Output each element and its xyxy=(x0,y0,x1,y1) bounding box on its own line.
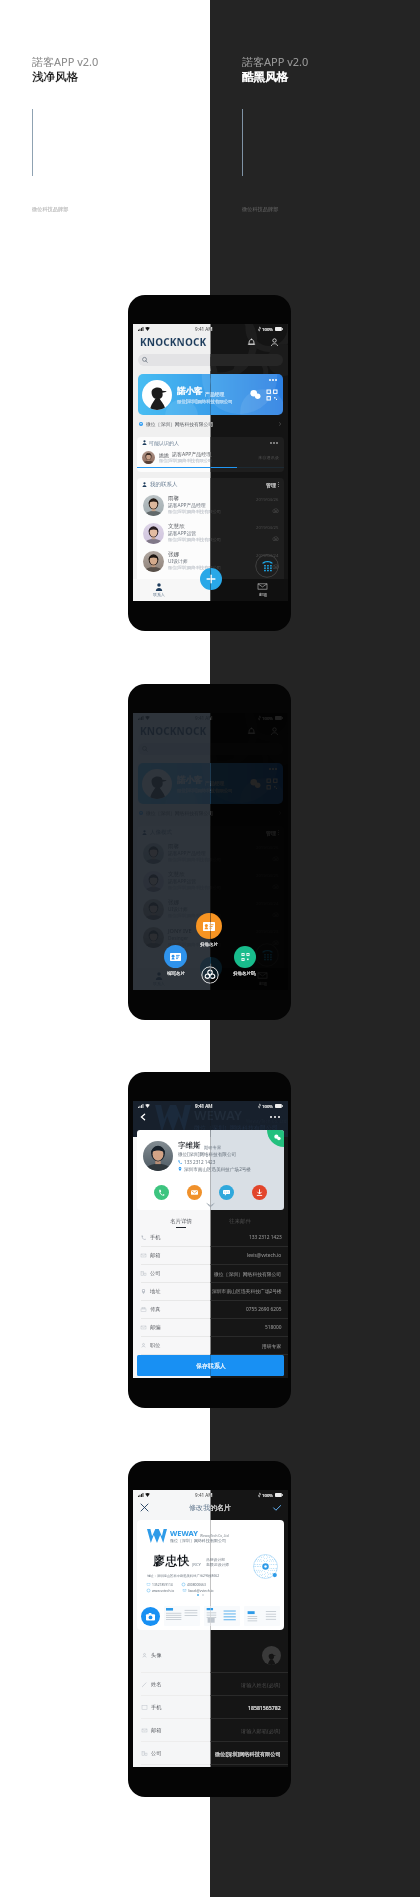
button[interactable]: 公司 xyxy=(141,1265,282,1282)
button[interactable]: 联系人 xyxy=(133,968,184,990)
button[interactable]: 公司 xyxy=(142,1742,281,1764)
button[interactable]: 邮编 xyxy=(141,1319,282,1336)
button[interactable]: 邮箱 xyxy=(142,1719,281,1741)
button[interactable]: 邮箱 xyxy=(236,579,288,601)
button[interactable]: Notifications xyxy=(244,335,258,349)
button[interactable]: save xyxy=(252,1185,267,1200)
button[interactable]: 姓名 xyxy=(142,1673,281,1695)
button[interactable]: Notifications xyxy=(244,724,258,738)
button[interactable]: call xyxy=(154,1185,169,1200)
button[interactable]: 諾小客 xyxy=(138,763,283,804)
button[interactable]: 张娜 xyxy=(143,547,279,575)
button[interactable]: 手机 xyxy=(142,1696,281,1718)
button[interactable]: KNOCKNOCK xyxy=(140,724,207,738)
button[interactable]: Dial xyxy=(255,943,279,967)
button[interactable]: 雨馨 xyxy=(143,839,279,867)
button[interactable]: Profile xyxy=(267,335,281,349)
button[interactable]: Profile xyxy=(267,724,281,738)
button[interactable]: 职位 xyxy=(141,1337,282,1354)
button[interactable] xyxy=(164,1606,200,1626)
button[interactable]: 名片详情 xyxy=(170,1215,192,1228)
button[interactable]: 諾小客 xyxy=(138,374,283,415)
button[interactable]: More xyxy=(270,1116,282,1118)
button[interactable]: QR code xyxy=(267,779,277,789)
button[interactable]: 联系人 xyxy=(133,579,184,601)
button[interactable]: 保存联系人 xyxy=(137,1355,284,1376)
button[interactable]: mail xyxy=(187,1185,202,1200)
button[interactable]: 扫描名片码 xyxy=(233,946,256,977)
button[interactable]: 管理 xyxy=(266,482,279,488)
button[interactable]: More xyxy=(270,1116,282,1118)
button[interactable]: 头像 xyxy=(142,1638,281,1672)
button[interactable]: 文慧欣 xyxy=(143,519,279,547)
button[interactable]: 雨馨 xyxy=(143,491,279,519)
button[interactable]: JONY IVE xyxy=(143,923,279,951)
button[interactable]: 传真 xyxy=(141,1301,282,1318)
button[interactable] xyxy=(204,1606,240,1626)
button[interactable]: 公司 xyxy=(142,1742,281,1764)
button[interactable]: KNOCKNOCK xyxy=(140,335,207,349)
button[interactable]: Search xyxy=(138,743,283,755)
button[interactable]: KNOCKNOCK xyxy=(140,724,207,738)
button[interactable]: 手机 xyxy=(141,1229,282,1246)
button[interactable]: mail xyxy=(187,1185,202,1200)
button[interactable]: QR code xyxy=(267,390,277,400)
button[interactable]: 管理 xyxy=(266,482,279,488)
button[interactable] xyxy=(244,1606,280,1626)
button[interactable]: 諾小客 xyxy=(138,763,283,804)
button[interactable]: Add xyxy=(200,957,222,979)
button[interactable]: 邮编 xyxy=(141,1319,282,1336)
button[interactable]: 微位［深圳］网络科技有限公司 xyxy=(139,808,282,818)
button[interactable]: 邮箱 xyxy=(236,579,288,601)
button[interactable]: 手机 xyxy=(141,1229,282,1246)
button[interactable]: 邮箱 xyxy=(142,1719,281,1741)
button[interactable]: 张娜 xyxy=(143,895,279,923)
button[interactable]: 文慧欣 xyxy=(143,519,279,547)
button[interactable]: save xyxy=(252,1185,267,1200)
button[interactable]: Add xyxy=(200,568,222,590)
button[interactable]: 管理 xyxy=(266,830,279,836)
button[interactable]: 名片详情 xyxy=(170,1215,192,1228)
button[interactable]: 邮箱 xyxy=(236,968,288,990)
button[interactable]: 邮箱 xyxy=(236,968,288,990)
button[interactable]: 张娜 xyxy=(143,547,279,575)
button[interactable]: 管理 xyxy=(266,830,279,836)
button[interactable]: Search xyxy=(138,354,283,366)
button[interactable]: 传真 xyxy=(141,1301,282,1318)
button[interactable]: 扫描名片 xyxy=(196,913,222,948)
button[interactable]: Confirm xyxy=(271,1502,282,1513)
button[interactable]: Close xyxy=(201,966,219,984)
button[interactable]: 往来邮件 xyxy=(229,1215,251,1227)
button[interactable]: 地址 xyxy=(141,1283,282,1300)
button[interactable]: 编写名片 xyxy=(164,945,187,977)
button[interactable]: 手机 xyxy=(142,1696,281,1718)
button[interactable]: Dial xyxy=(255,554,279,578)
button[interactable]: Add xyxy=(200,957,222,979)
button[interactable]: Chat xyxy=(250,389,261,400)
button[interactable]: 邮箱 xyxy=(141,1247,282,1264)
button[interactable]: 张娜 xyxy=(143,895,279,923)
button[interactable]: Dial xyxy=(255,554,279,578)
button[interactable]: 职位 xyxy=(141,1337,282,1354)
button[interactable]: 联系人 xyxy=(133,968,184,990)
button[interactable]: Chat xyxy=(250,778,261,789)
button[interactable]: 姚姚 xyxy=(142,448,279,467)
button[interactable]: 文慧欣 xyxy=(143,867,279,895)
button[interactable]: QR code xyxy=(267,390,277,400)
button[interactable]: JONY IVE xyxy=(143,923,279,951)
button[interactable]: KNOCKNOCK xyxy=(140,335,207,349)
button[interactable]: Notifications xyxy=(244,724,258,738)
button[interactable]: 地址 xyxy=(141,1283,282,1300)
button[interactable]: 諾小客 xyxy=(138,374,283,415)
button[interactable]: 编写名片 xyxy=(164,945,187,977)
button[interactable]: Confirm xyxy=(271,1502,282,1513)
button[interactable]: 微位［深圳］网络科技有限公司 xyxy=(139,419,282,429)
button[interactable]: 姚姚 xyxy=(142,448,279,467)
button[interactable]: Notifications xyxy=(244,335,258,349)
button[interactable]: 公司 xyxy=(141,1265,282,1282)
button[interactable]: 保存联系人 xyxy=(137,1355,284,1376)
button[interactable]: Camera xyxy=(141,1607,160,1626)
button[interactable]: 微位［深圳］网络科技有限公司 xyxy=(139,808,282,818)
button[interactable]: Camera xyxy=(141,1607,160,1626)
button[interactable]: 联系人 xyxy=(133,579,184,601)
